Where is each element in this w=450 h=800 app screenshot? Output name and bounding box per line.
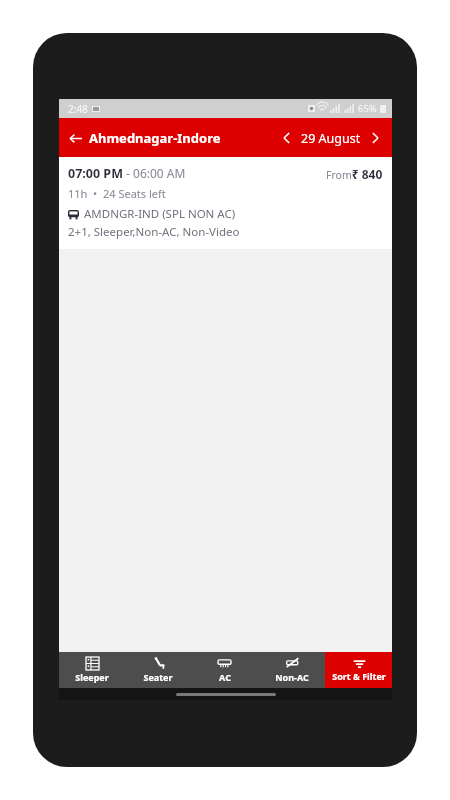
staticText: AMDNGR-IND (SPL NON AC) (84, 206, 236, 222)
button[interactable]: Previous day (278, 127, 296, 149)
staticText: AC (219, 671, 231, 683)
button[interactable]: Sort & Filter (325, 652, 392, 688)
staticText: Ahmednagar-Indore (89, 129, 221, 147)
other: Back (69, 132, 82, 145)
staticText: 07:00 PM - 06:00 AM (68, 165, 186, 182)
staticText: 11h • 24 Seats left (68, 186, 166, 201)
button[interactable]: Back (59, 123, 229, 153)
button[interactable]: Sleeper (59, 652, 125, 688)
staticText: 65% (358, 102, 377, 115)
staticText: Sleeper (75, 671, 109, 683)
staticText: 2:48 (68, 102, 88, 116)
staticText: Seater (143, 671, 173, 683)
button[interactable]: Seater (125, 652, 191, 688)
staticText: Sort & Filter (332, 670, 386, 682)
button[interactable]: Non-AC (258, 652, 325, 688)
staticText: From₹ 840 (326, 166, 383, 182)
button[interactable]: 29 August (301, 130, 361, 147)
button[interactable]: 07:00 PM - 06:00 AM (59, 157, 392, 249)
staticText: 2+1, Sleeper,Non-AC, Non-Video (68, 224, 240, 240)
button[interactable]: Next day (366, 127, 384, 149)
staticText: Non-AC (275, 671, 309, 683)
button[interactable]: AC (191, 652, 258, 688)
